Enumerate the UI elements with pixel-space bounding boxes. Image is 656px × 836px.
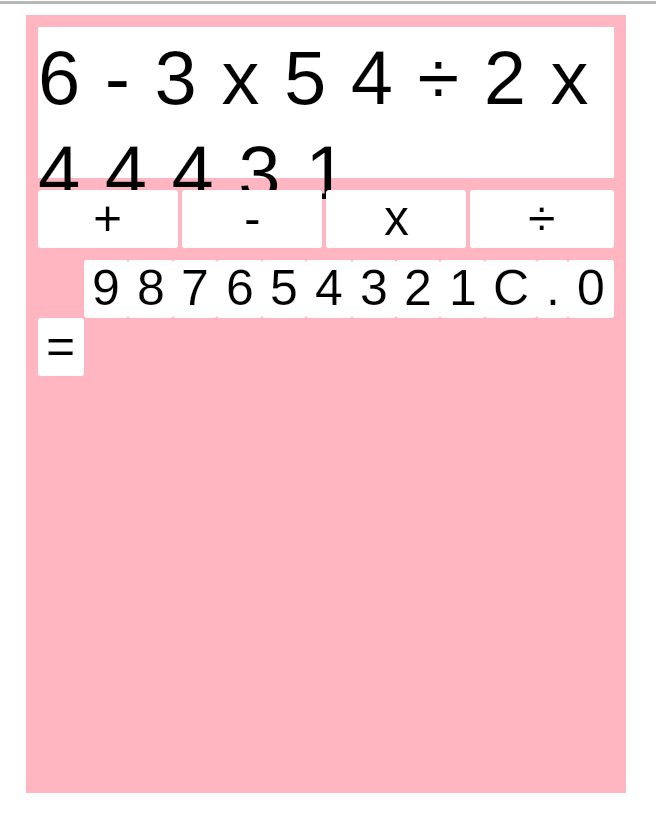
button[interactable]: 5 <box>262 260 306 318</box>
staticText: 2 <box>404 260 432 316</box>
button[interactable]: 6 <box>217 260 262 318</box>
staticText: C <box>493 260 530 316</box>
button[interactable]: C <box>485 260 537 318</box>
staticText: 6 - 3 x 5 4 ÷ 2 x 4 4 4 3 1 <box>38 35 614 215</box>
staticText: 3 <box>360 260 388 316</box>
staticText: ÷ <box>528 190 556 246</box>
button[interactable]: 4 <box>306 260 352 318</box>
staticText: 7 <box>181 260 209 316</box>
staticText: x <box>384 190 409 246</box>
staticText: = <box>46 318 76 374</box>
staticText: 6 <box>226 260 254 316</box>
button[interactable]: 1 <box>440 260 485 318</box>
button[interactable]: 2 <box>396 260 440 318</box>
button[interactable]: 9 <box>84 260 128 318</box>
button[interactable]: = <box>38 318 84 376</box>
button[interactable]: - <box>182 190 322 248</box>
staticText: 4 <box>315 260 343 316</box>
staticText: + <box>93 190 123 246</box>
button[interactable]: . <box>537 260 568 318</box>
button[interactable]: 3 <box>352 260 396 318</box>
button[interactable]: 0 <box>568 260 614 318</box>
button[interactable]: x <box>326 190 466 248</box>
button[interactable]: 7 <box>173 260 217 318</box>
button[interactable]: 8 <box>128 260 173 318</box>
button[interactable]: ÷ <box>470 190 614 248</box>
staticText: 8 <box>137 260 165 316</box>
staticText: . <box>546 260 560 316</box>
button[interactable]: + <box>38 190 178 248</box>
staticText: 5 <box>270 260 298 316</box>
staticText: - <box>244 190 261 246</box>
staticText: 0 <box>577 260 605 316</box>
staticText: 9 <box>92 260 120 316</box>
staticText: 1 <box>449 260 477 316</box>
